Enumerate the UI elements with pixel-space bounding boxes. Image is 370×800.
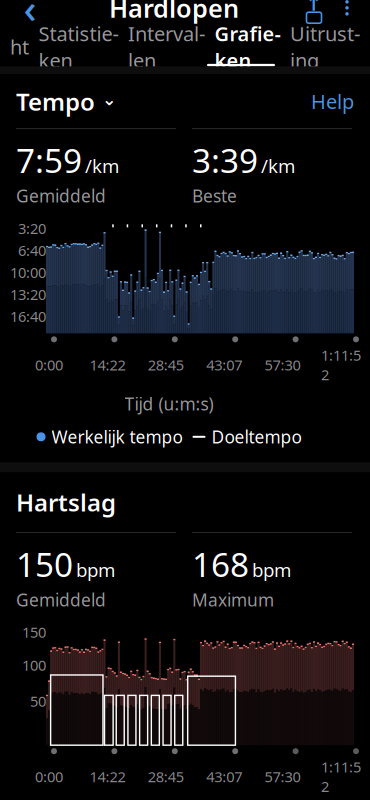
- staticText: 1:11:52: [321, 757, 361, 796]
- staticText: Hartslag: [16, 486, 116, 518]
- staticText: 14:22: [89, 355, 125, 375]
- staticText: Werkelijk tempo: [51, 425, 182, 448]
- staticText: Statistieken: [38, 20, 118, 73]
- staticText: ‹: [23, 0, 36, 34]
- staticText: Gemiddeld: [16, 588, 106, 611]
- button[interactable]: Share: [296, 0, 332, 28]
- staticText: 16:40: [10, 307, 46, 326]
- staticText: 168: [192, 542, 249, 586]
- staticText: 43:07: [206, 355, 242, 375]
- staticText: ht: [10, 34, 29, 60]
- staticText: 28:45: [148, 767, 184, 786]
- staticText: 43:07: [206, 767, 242, 786]
- button[interactable]: ht: [10, 30, 29, 64]
- staticText: Grafieken: [214, 20, 280, 73]
- staticText: Gemiddeld: [16, 184, 106, 207]
- staticText: 7:59: [16, 138, 82, 182]
- staticText: 100: [22, 655, 46, 675]
- staticText: 150: [16, 542, 73, 586]
- staticText: 3:20: [18, 219, 46, 238]
- staticText: 150: [22, 622, 46, 642]
- staticText: 6:40: [18, 241, 46, 260]
- staticText: bpm: [76, 557, 115, 582]
- staticText: 57:30: [265, 767, 301, 786]
- staticText: 0:00: [35, 767, 63, 786]
- staticText: ↑: [305, 0, 322, 15]
- staticText: bpm: [252, 557, 291, 582]
- staticText: Uitrusting: [290, 20, 360, 73]
- staticText: ⌄: [102, 89, 117, 109]
- staticText: Maximum: [192, 588, 274, 611]
- staticText: 50: [30, 691, 46, 711]
- button[interactable]: Back: [8, 0, 52, 28]
- staticText: Help: [311, 88, 354, 115]
- staticText: Doeltempo: [211, 425, 301, 448]
- button[interactable]: Grafieken: [214, 30, 280, 64]
- button[interactable]: Statistieken: [38, 30, 118, 64]
- button[interactable]: Intervallen: [128, 30, 205, 64]
- staticText: /km: [261, 153, 295, 178]
- staticText: 1:11:52: [321, 345, 361, 384]
- staticText: 57:30: [265, 355, 301, 375]
- staticText: Tempo: [16, 85, 95, 117]
- staticText: Intervallen: [128, 20, 205, 73]
- staticText: 10:00: [10, 263, 46, 282]
- button[interactable]: Tempo: [16, 88, 117, 114]
- staticText: Hardlopen: [109, 0, 239, 25]
- staticText: 3:39: [192, 138, 258, 182]
- button[interactable]: More options: [332, 0, 362, 28]
- staticText: /km: [85, 153, 119, 178]
- staticText: 28:45: [148, 355, 184, 375]
- staticText: Beste: [192, 184, 237, 207]
- staticText: 14:22: [89, 767, 125, 786]
- button[interactable]: Uitrusting: [290, 30, 360, 64]
- staticText: 0:00: [35, 355, 63, 375]
- staticText: 13:20: [10, 285, 46, 304]
- button[interactable]: Help: [311, 88, 354, 114]
- staticText: Tijd (u:m:s): [124, 392, 213, 415]
